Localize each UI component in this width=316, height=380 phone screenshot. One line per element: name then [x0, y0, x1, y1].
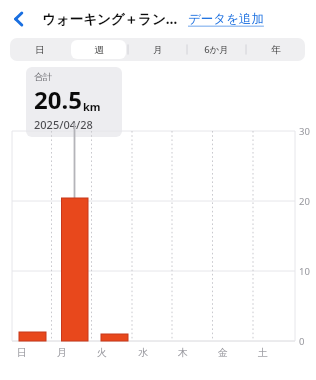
staticText: 水	[138, 346, 148, 359]
staticText: 2025/04/28	[34, 117, 93, 132]
staticText: 火	[97, 346, 107, 359]
staticText: 20.5	[34, 83, 82, 116]
staticText: 月	[153, 44, 163, 56]
staticText: データを追加	[188, 11, 264, 27]
button[interactable]: 戻る	[0, 0, 38, 38]
staticText: 日	[35, 44, 45, 56]
button[interactable]: 月	[130, 40, 185, 59]
staticText: ウォーキング＋ラン…	[42, 10, 178, 28]
staticText: 木	[178, 346, 188, 359]
staticText: 0	[299, 335, 305, 348]
staticText: 6か月	[204, 43, 229, 56]
button[interactable]: 6か月	[189, 40, 244, 59]
staticText: 土	[258, 346, 268, 359]
button[interactable]: データを追加	[186, 7, 266, 31]
staticText: 日	[17, 346, 27, 359]
staticText: 30	[299, 125, 310, 138]
button[interactable]: 日	[12, 40, 67, 59]
staticText: 20	[299, 195, 310, 208]
staticText: 週	[94, 44, 104, 56]
staticText: km	[83, 99, 101, 114]
staticText: 合計	[34, 71, 52, 82]
button[interactable]: 週	[71, 40, 126, 59]
staticText: 10	[299, 265, 310, 278]
staticText: 金	[218, 346, 228, 359]
staticText: 月	[57, 346, 67, 359]
button[interactable]: 年	[248, 40, 303, 59]
staticText: 年	[271, 44, 281, 56]
